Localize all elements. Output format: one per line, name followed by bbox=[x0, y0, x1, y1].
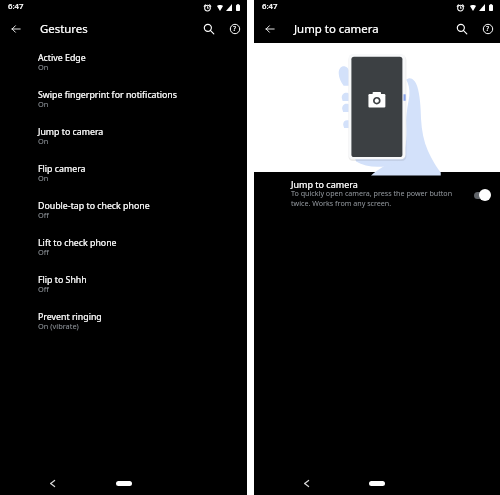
staticText: On bbox=[38, 62, 49, 72]
staticText: On bbox=[38, 173, 49, 183]
button[interactable]: Active Edge bbox=[0, 52, 247, 89]
button[interactable]: Search bbox=[199, 19, 218, 38]
staticText: Flip camera bbox=[38, 163, 86, 175]
staticText: Flip to Shhh bbox=[38, 274, 87, 286]
button[interactable]: Prevent ringing bbox=[0, 311, 247, 348]
button[interactable]: Swipe fingerprint for notifications bbox=[0, 89, 247, 126]
button[interactable]: Flip camera bbox=[0, 163, 247, 200]
staticText: Lift to check phone bbox=[38, 237, 117, 249]
staticText: To quickly open camera, press the power … bbox=[291, 188, 467, 208]
button[interactable]: Home bbox=[369, 481, 385, 486]
button[interactable]: Back bbox=[299, 476, 313, 490]
staticText: Prevent ringing bbox=[38, 311, 102, 323]
staticText: On (vibrate) bbox=[38, 321, 79, 331]
staticText: Double-tap to check phone bbox=[38, 200, 150, 212]
staticText: ? bbox=[486, 24, 490, 34]
button[interactable]: Jump to camera bbox=[0, 126, 247, 163]
button[interactable]: Search bbox=[452, 19, 471, 38]
button[interactable]: Double-tap to check phone bbox=[0, 200, 247, 237]
button[interactable]: Jump to camera bbox=[254, 172, 500, 216]
staticText: Off bbox=[38, 247, 49, 257]
staticText: Jump to camera bbox=[294, 21, 379, 37]
staticText: 6:47 bbox=[262, 1, 278, 12]
staticText: Off bbox=[38, 210, 49, 220]
button[interactable]: Help bbox=[478, 19, 497, 38]
staticText: On bbox=[38, 136, 49, 146]
staticText: Swipe fingerprint for notifications bbox=[38, 89, 177, 101]
staticText: Off bbox=[38, 284, 49, 294]
staticText: On bbox=[38, 99, 49, 109]
button[interactable]: Help bbox=[225, 19, 244, 38]
staticText: Jump to camera bbox=[38, 126, 104, 138]
staticText: Jump to camera bbox=[291, 178, 358, 190]
button[interactable]: Back bbox=[45, 476, 59, 490]
button[interactable]: Home bbox=[116, 481, 132, 486]
button[interactable]: Back bbox=[260, 19, 280, 39]
button[interactable]: Jump to camera toggle bbox=[474, 189, 491, 201]
button[interactable]: Flip to Shhh bbox=[0, 274, 247, 311]
staticText: 6:47 bbox=[8, 1, 24, 12]
button[interactable]: Back bbox=[6, 19, 26, 39]
button[interactable]: Lift to check phone bbox=[0, 237, 247, 274]
staticText: Active Edge bbox=[38, 52, 86, 64]
staticText: ? bbox=[233, 24, 237, 34]
staticText: Gestures bbox=[40, 21, 88, 37]
